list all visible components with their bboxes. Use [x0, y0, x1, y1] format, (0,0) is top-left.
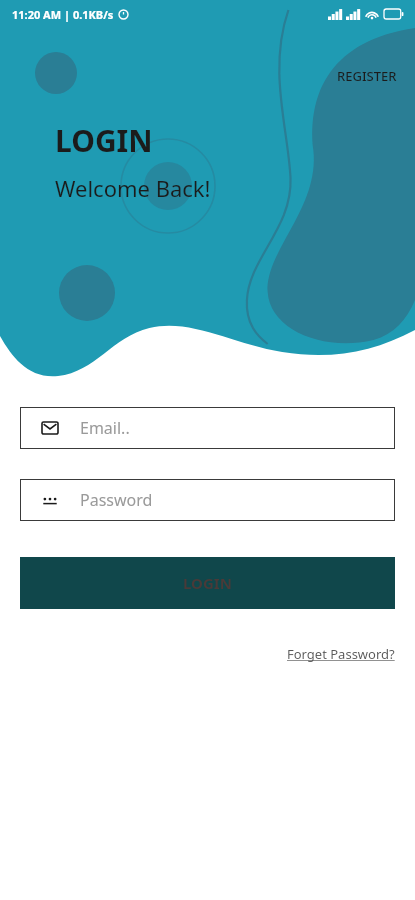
staticText: 11:20 AM | 0.1KB/s	[12, 7, 114, 22]
staticText: LOGIN	[183, 573, 232, 593]
staticText: REGISTER	[337, 67, 397, 85]
staticText: LOGIN	[55, 120, 153, 161]
staticText: Email..	[80, 417, 130, 439]
staticText: Welcome Back!	[55, 173, 211, 203]
button[interactable]: Forget Password?	[287, 641, 395, 667]
staticText: Forget Password?	[287, 645, 395, 663]
button[interactable]: Email	[20, 407, 395, 449]
staticText: Password	[80, 489, 153, 511]
button[interactable]: LOGIN	[20, 557, 395, 609]
other: Email	[42, 422, 58, 434]
other: Password	[42, 494, 58, 506]
button[interactable]: Password	[20, 479, 395, 521]
button[interactable]: REGISTER	[329, 63, 405, 89]
